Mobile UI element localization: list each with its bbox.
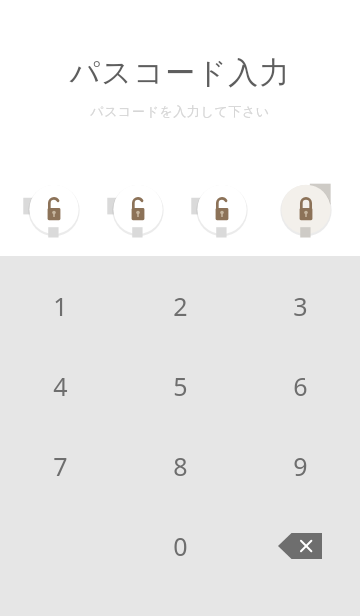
button[interactable]: 9	[240, 426, 360, 506]
button[interactable]: Empty digit	[22, 176, 86, 240]
staticText: 3	[293, 289, 308, 323]
staticText: 8	[173, 449, 188, 483]
staticText: パスコード入力	[69, 54, 291, 92]
button[interactable]: 3	[240, 266, 360, 346]
staticText: パスコードを入力して下さい	[90, 103, 270, 119]
button[interactable]: 2	[120, 266, 240, 346]
button[interactable]: Empty digit	[190, 176, 254, 240]
button[interactable]: Backspace	[240, 506, 360, 586]
button[interactable]: Entered digit	[274, 176, 338, 240]
staticText: 4	[53, 369, 68, 403]
button[interactable]: 7	[0, 426, 120, 506]
button[interactable]: 1	[0, 266, 120, 346]
staticText: 2	[173, 289, 188, 323]
staticText: 5	[173, 369, 188, 403]
button[interactable]: 8	[120, 426, 240, 506]
button[interactable]: 5	[120, 346, 240, 426]
button[interactable]: 6	[240, 346, 360, 426]
staticText: 6	[293, 369, 308, 403]
button[interactable]: 4	[0, 346, 120, 426]
button[interactable]: 0	[120, 506, 240, 586]
staticText: 1	[53, 289, 68, 323]
staticText: 0	[173, 529, 188, 563]
staticText: 9	[293, 449, 308, 483]
button[interactable]: Empty digit	[106, 176, 170, 240]
staticText: 7	[53, 449, 68, 483]
